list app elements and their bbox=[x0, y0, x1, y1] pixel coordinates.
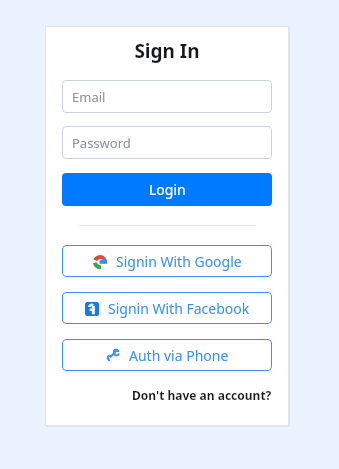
staticText: Signin With Google bbox=[116, 252, 242, 271]
button[interactable]: Login bbox=[62, 173, 272, 206]
button[interactable]: Email bbox=[62, 80, 272, 113]
staticText: Signin With Facebook bbox=[108, 299, 250, 318]
button[interactable]: Password bbox=[62, 126, 272, 159]
staticText: Email bbox=[72, 88, 106, 106]
button[interactable]: Sign in with Google bbox=[62, 245, 272, 277]
button[interactable]: Sign in with Facebook bbox=[62, 292, 272, 324]
staticText: Password bbox=[72, 134, 131, 152]
staticText: Don't have an account? bbox=[132, 387, 272, 403]
other: Phone bbox=[106, 349, 120, 363]
staticText: Auth via Phone bbox=[129, 346, 229, 365]
button[interactable]: Don't have an account? bbox=[62, 387, 272, 403]
staticText: Login bbox=[149, 180, 186, 199]
staticText: Sign In bbox=[62, 38, 272, 64]
button[interactable]: Authenticate via phone bbox=[62, 339, 272, 371]
